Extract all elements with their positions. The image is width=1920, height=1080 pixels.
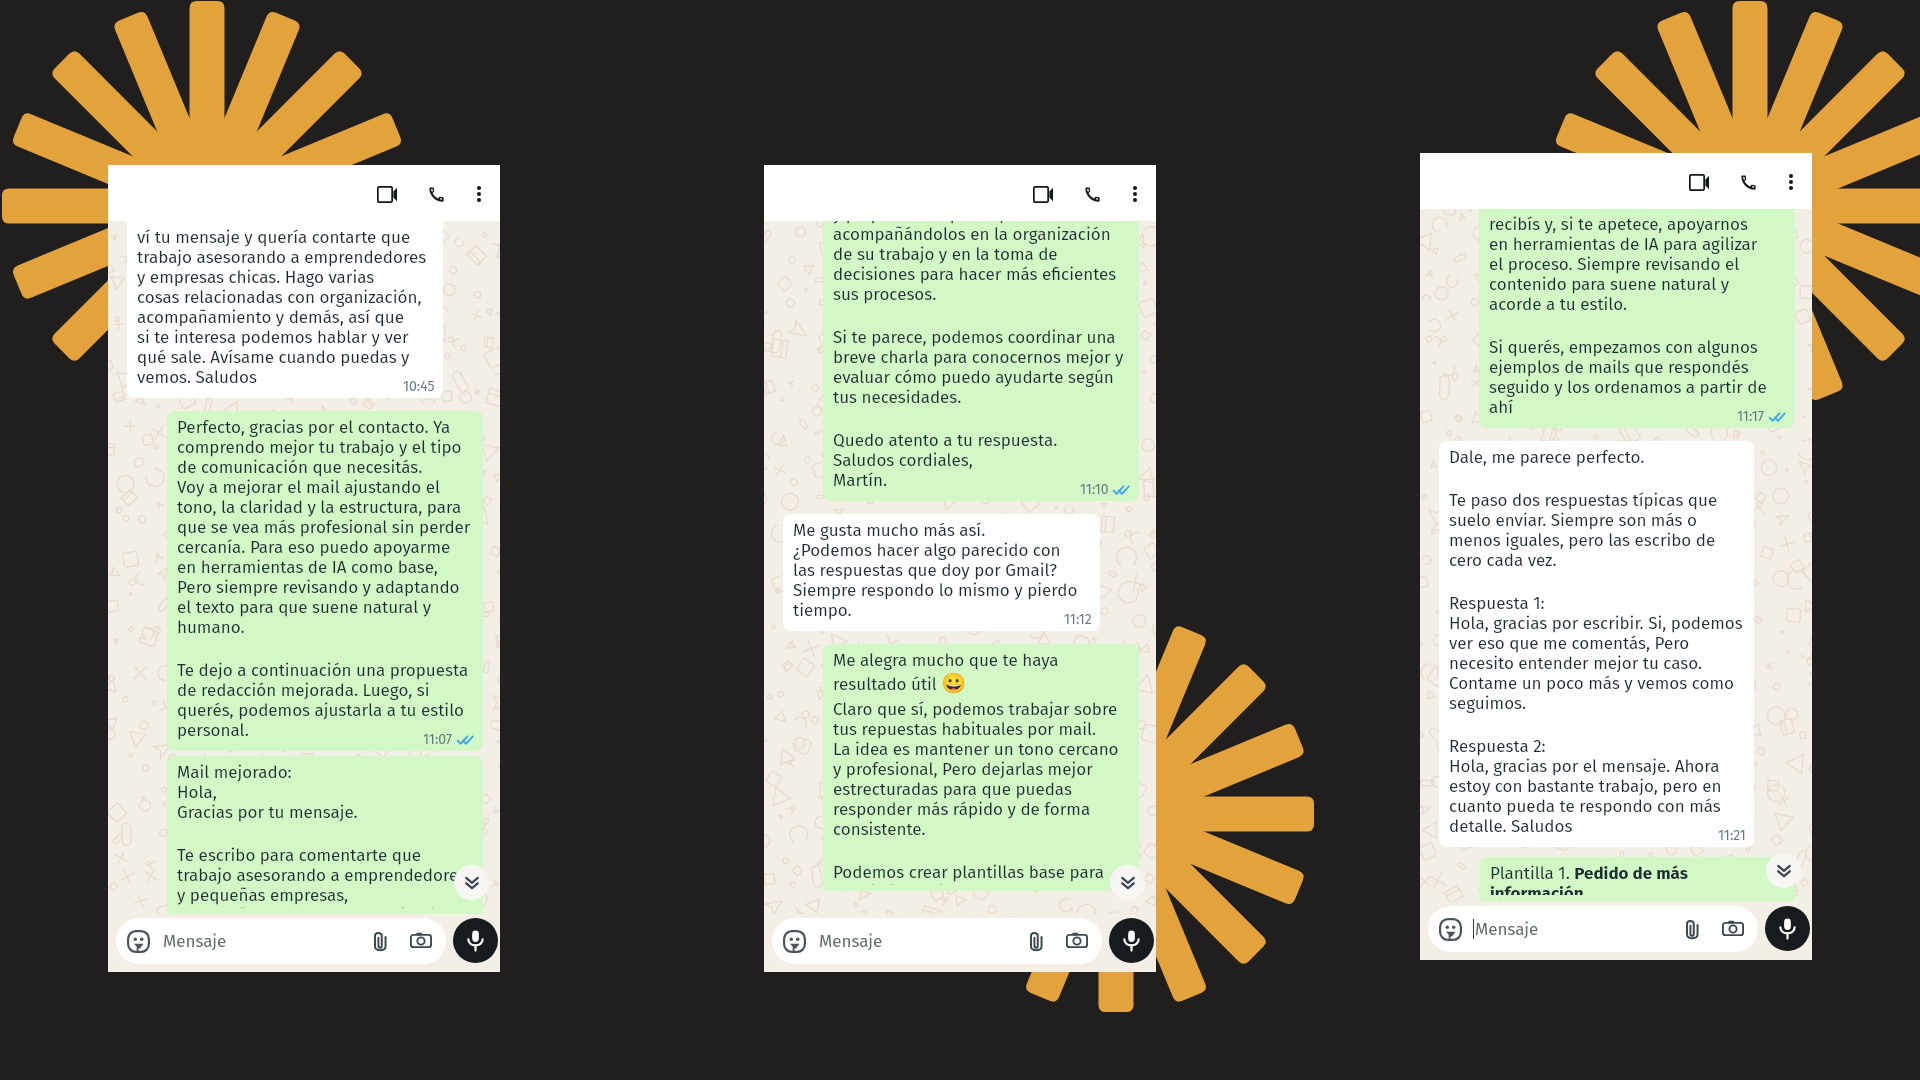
button[interactable]: Video call xyxy=(365,172,409,216)
staticText: Dale, me parece perfecto. xyxy=(1449,447,1645,467)
staticText: Mensaje xyxy=(1475,919,1539,939)
button[interactable]: Video call xyxy=(1677,160,1721,204)
staticText: Mensaje xyxy=(163,931,227,951)
staticText: Respuesta 1: Hola, gracias por escribir.… xyxy=(1449,593,1743,713)
staticText: 11:07 xyxy=(423,731,453,748)
button[interactable]: Mensaje xyxy=(116,918,446,964)
button[interactable]: Mail mejorado: Hola, Gracias por tu mens… xyxy=(167,756,483,914)
button[interactable]: Scroll to bottom xyxy=(454,865,489,900)
staticText: 11:21 xyxy=(1718,827,1746,844)
button[interactable]: More options xyxy=(458,173,500,215)
button[interactable]: Scroll to bottom xyxy=(1766,853,1801,888)
staticText: Claro que sí, podemos trabajar sobre tus… xyxy=(833,699,1119,839)
staticText: Te dejo a continuación una propuesta de … xyxy=(177,660,469,740)
button[interactable]: Me gusta mucho más así. ¿Podemos hacer a… xyxy=(783,514,1100,631)
staticText: Perfecto, gracias por el contacto. Ya co… xyxy=(177,417,471,637)
staticText: Mail mejorado: Hola, Gracias por tu mens… xyxy=(177,762,358,822)
staticText: 11:10 xyxy=(1080,481,1109,498)
staticText: Te escribo para comentarte que trabajo a… xyxy=(177,845,467,908)
button[interactable]: y pequeñas empresas, acompañándolos en l… xyxy=(823,221,1139,501)
button[interactable]: Voice call xyxy=(1070,172,1114,216)
staticText: Si querés, empezamos con algunos ejemplo… xyxy=(1489,337,1767,417)
button[interactable]: Record voice message xyxy=(453,918,498,963)
staticText: ví tu mensaje y quería contarte que trab… xyxy=(137,227,427,387)
staticText: 11:12 xyxy=(1064,611,1092,628)
button[interactable]: Scroll to bottom xyxy=(1110,865,1145,900)
staticText: 11:17 xyxy=(1737,408,1765,425)
button[interactable]: Record voice message xyxy=(1109,918,1154,963)
staticText: recibís y, si te apetece, apoyarnos en h… xyxy=(1489,214,1758,314)
staticText: Podemos crear plantillas base para los d… xyxy=(833,862,1108,885)
staticText: Me alegra mucho que te haya resultado út… xyxy=(833,650,1059,694)
button[interactable]: More options xyxy=(1770,161,1812,203)
button[interactable]: Record voice message xyxy=(1765,906,1810,951)
button[interactable]: Mensaje xyxy=(1428,906,1758,952)
button[interactable]: Perfecto, gracias por el contacto. Ya co… xyxy=(167,411,483,751)
button[interactable]: Voice call xyxy=(1726,160,1770,204)
button[interactable]: Plantilla 1. Pedido de más información xyxy=(1480,857,1795,901)
staticText: Si te parece, podemos coordinar una brev… xyxy=(833,327,1124,407)
staticText: Respuesta 2: Hola, gracias por el mensaj… xyxy=(1449,736,1722,836)
button[interactable]: recibís y, si te apetece, apoyarnos en h… xyxy=(1479,209,1795,428)
staticText: Mensaje xyxy=(819,931,883,951)
staticText: 10:45 xyxy=(403,378,435,395)
staticText: Me gusta mucho más así. ¿Podemos hacer a… xyxy=(793,520,1078,620)
button[interactable]: Me alegra mucho que te haya resultado út… xyxy=(823,644,1139,891)
button[interactable]: ví tu mensaje y quería contarte que trab… xyxy=(127,221,443,398)
staticText: Quedo atento a tu respuesta. Saludos cor… xyxy=(833,430,1058,490)
staticText: Plantilla 1. Pedido de más información xyxy=(1490,863,1688,895)
button[interactable]: Voice call xyxy=(414,172,458,216)
button[interactable]: More options xyxy=(1114,173,1156,215)
staticText: Te paso dos respuestas típicas que suelo… xyxy=(1449,490,1718,570)
button[interactable]: Dale, me parece perfecto. xyxy=(1439,441,1754,847)
button[interactable]: Mensaje xyxy=(772,918,1102,964)
staticText: y pequeñas empresas, acompañándolos en l… xyxy=(833,221,1117,304)
button[interactable]: Video call xyxy=(1021,172,1065,216)
